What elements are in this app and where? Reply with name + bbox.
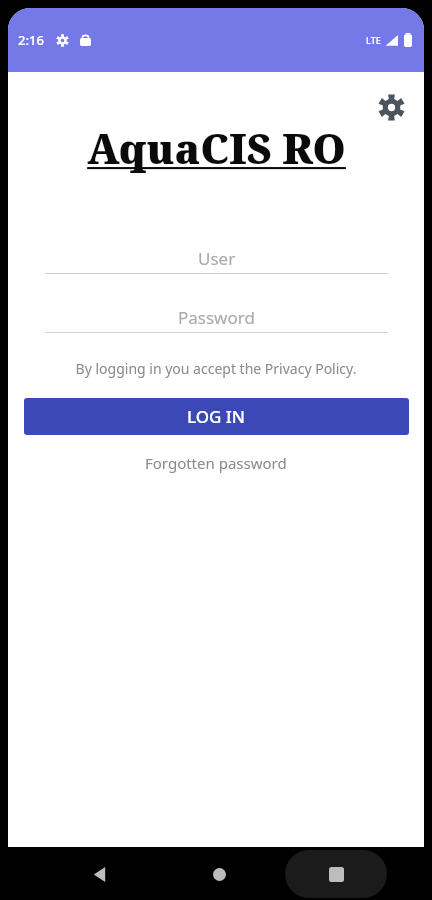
button[interactable]: Settings	[368, 84, 414, 130]
staticText: By logging in you accept the Privacy Pol…	[70, 359, 362, 378]
staticText: Forgotten password	[145, 453, 287, 473]
button[interactable]: LOG IN	[24, 398, 409, 435]
staticText: LTE	[366, 34, 381, 46]
button[interactable]: Back	[78, 853, 120, 895]
staticText: User	[198, 247, 236, 270]
staticText: AquaCIS RO	[87, 120, 346, 176]
button[interactable]: Password	[45, 303, 388, 333]
staticText: LOG IN	[187, 405, 246, 428]
staticText: 2:16	[18, 31, 44, 49]
button[interactable]: Home	[198, 853, 240, 895]
button[interactable]: User	[45, 244, 388, 274]
button[interactable]: Recent apps	[285, 850, 387, 898]
button[interactable]: Forgotten password	[127, 446, 305, 480]
staticText: Password	[178, 306, 255, 329]
